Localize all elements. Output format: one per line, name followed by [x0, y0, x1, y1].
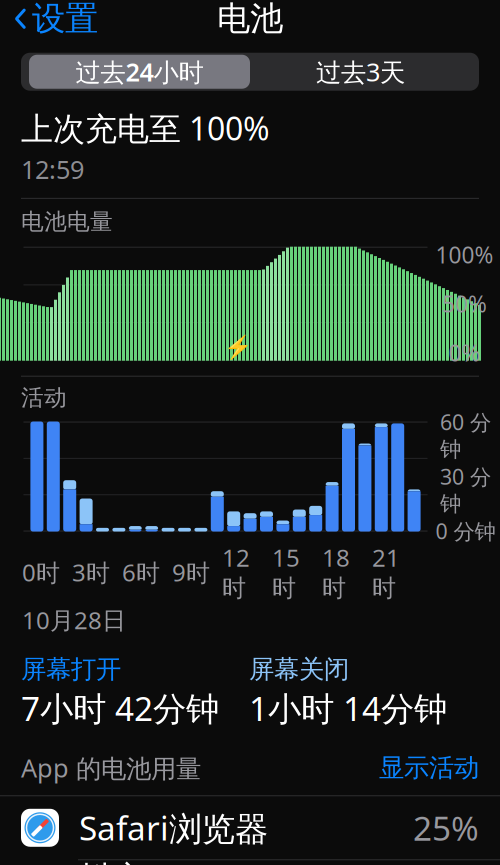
staticText: 活动	[21, 384, 67, 411]
staticText: 9时	[172, 556, 210, 588]
staticText: 0%	[448, 338, 480, 368]
staticText: ⚡	[223, 335, 251, 361]
staticText: 电池	[217, 0, 283, 39]
staticText: 6时	[122, 556, 160, 588]
staticText: 过去3天	[316, 55, 405, 88]
staticText: 25%	[413, 806, 479, 850]
staticText: 屏幕打开	[21, 654, 121, 685]
staticText: 显示活动	[379, 752, 479, 783]
staticText: 21时	[372, 542, 400, 603]
button[interactable]: 设置	[0, 0, 108, 45]
staticText: Safari浏览器	[79, 806, 268, 850]
staticText: 12:59	[21, 152, 84, 186]
staticText: 上次充电至 100%	[21, 107, 270, 149]
staticText: 设置	[32, 0, 98, 39]
staticText: 7小时 42分钟	[21, 686, 219, 730]
staticText: 抖音	[79, 858, 145, 865]
staticText: 100%	[435, 240, 493, 270]
staticText: App 的电池用量	[21, 751, 201, 785]
staticText: 30 分钟	[440, 462, 491, 517]
staticText: 0 分钟	[435, 517, 495, 545]
button[interactable]: 过去24小时	[29, 55, 250, 89]
staticText: 屏幕关闭	[249, 654, 349, 685]
staticText: 50%	[442, 289, 487, 319]
button[interactable]: Safari浏览器	[0, 796, 500, 859]
staticText: 过去24小时	[75, 55, 203, 88]
staticText: 12时	[222, 542, 250, 603]
staticText: 10月28日	[22, 604, 126, 636]
staticText: 18时	[322, 542, 350, 603]
button[interactable]: 过去3天	[250, 55, 471, 89]
staticText: 15时	[272, 542, 300, 603]
staticText: 0时	[22, 556, 60, 588]
staticText: 3时	[72, 556, 110, 588]
staticText: 60 分钟	[440, 408, 491, 462]
staticText: 1小时 14分钟	[249, 686, 447, 730]
button[interactable]: 显示活动	[369, 748, 479, 787]
staticText: 电池电量	[21, 208, 113, 236]
button[interactable]: ♪	[0, 860, 500, 865]
